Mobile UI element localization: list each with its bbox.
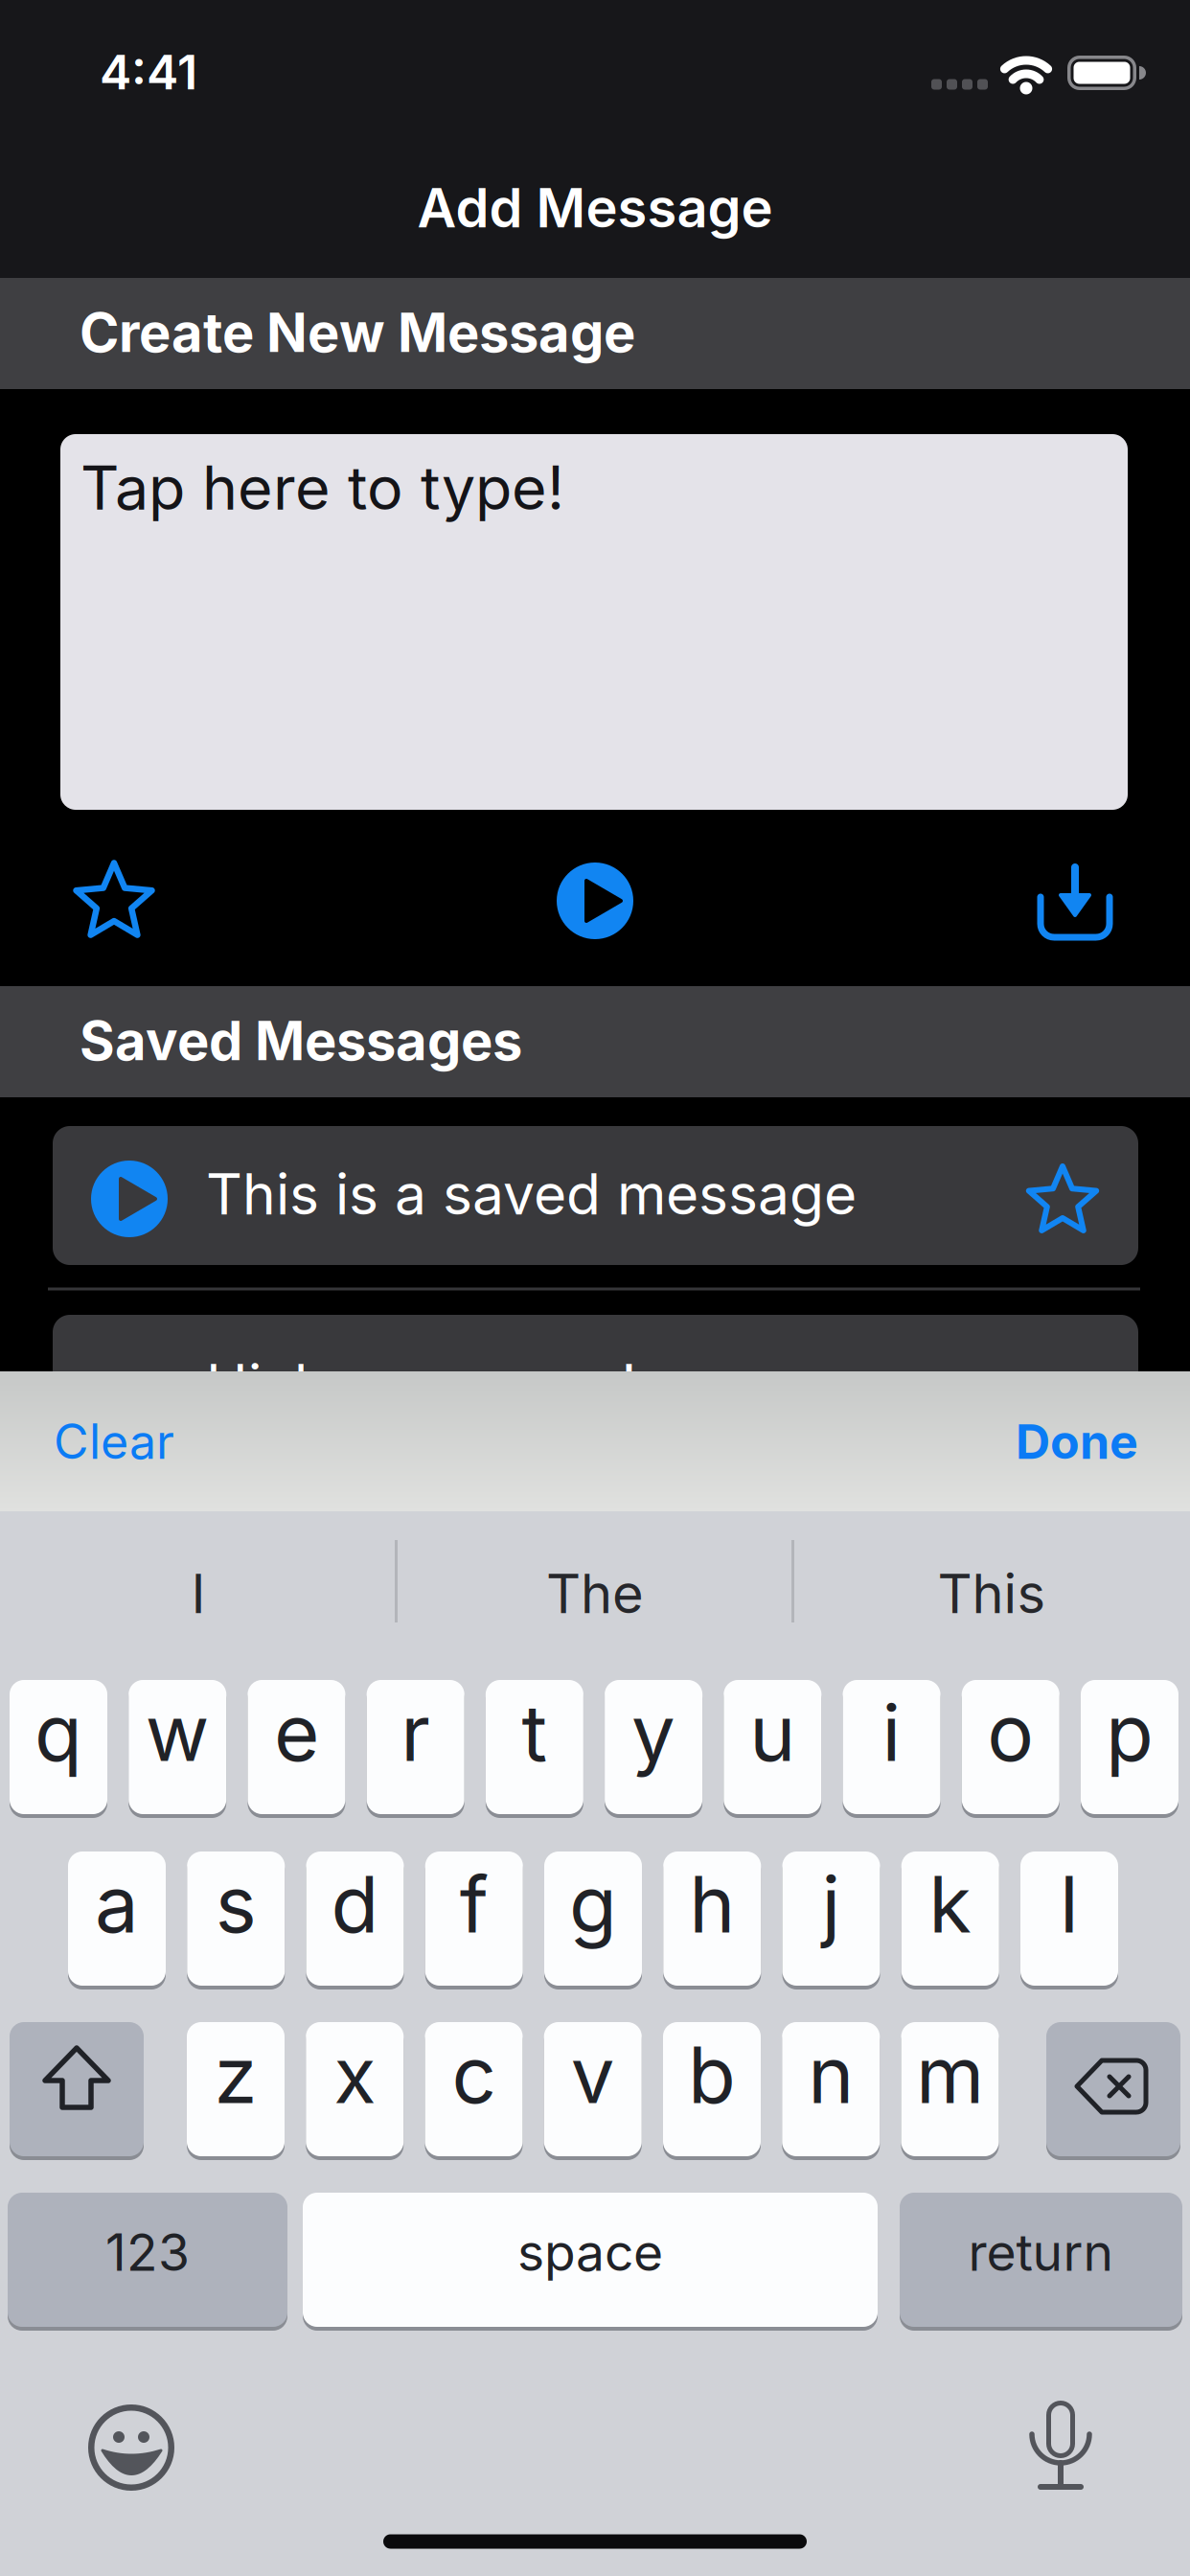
button[interactable]: c bbox=[425, 2022, 523, 2156]
button[interactable]: t bbox=[486, 1680, 583, 1814]
staticText: k bbox=[929, 1857, 972, 1951]
button[interactable]: Save message bbox=[1033, 849, 1117, 945]
button[interactable]: h bbox=[663, 1851, 761, 1986]
button[interactable]: u bbox=[724, 1680, 821, 1814]
staticText: f bbox=[460, 1857, 488, 1951]
button[interactable]: Favorite bbox=[1021, 1159, 1104, 1241]
button[interactable]: Hi, how are you! bbox=[53, 1315, 1138, 1454]
staticText: Create New Message bbox=[80, 300, 635, 365]
staticText: e bbox=[274, 1686, 319, 1780]
staticText: 123 bbox=[105, 2221, 190, 2283]
button[interactable]: w bbox=[129, 1680, 226, 1814]
button[interactable]: Tap here to type! bbox=[60, 434, 1128, 810]
staticText: t bbox=[522, 1686, 547, 1780]
button[interactable]: The bbox=[403, 1522, 787, 1666]
staticText: g bbox=[569, 1857, 617, 1951]
button[interactable]: r bbox=[367, 1680, 464, 1814]
button[interactable]: Emoji bbox=[85, 2402, 177, 2494]
staticText: d bbox=[331, 1857, 379, 1951]
staticText: u bbox=[750, 1686, 796, 1780]
staticText: The bbox=[546, 1561, 644, 1626]
staticText: x bbox=[334, 2028, 376, 2122]
staticText: j bbox=[822, 1857, 841, 1951]
button[interactable]: l bbox=[1020, 1851, 1118, 1986]
staticText: i bbox=[882, 1686, 901, 1780]
button[interactable]: s bbox=[187, 1851, 285, 1986]
button[interactable]: Shift bbox=[10, 2022, 144, 2156]
staticText: n bbox=[808, 2028, 854, 2122]
button[interactable]: k bbox=[901, 1851, 999, 1986]
staticText: h bbox=[689, 1857, 735, 1951]
staticText: b bbox=[688, 2028, 736, 2122]
button[interactable]: i bbox=[843, 1680, 940, 1814]
button[interactable]: This bbox=[800, 1522, 1183, 1666]
staticText: c bbox=[452, 2028, 496, 2122]
button[interactable]: f bbox=[425, 1851, 523, 1986]
staticText: p bbox=[1106, 1686, 1154, 1780]
button[interactable]: Done bbox=[851, 1371, 1138, 1511]
staticText: Done bbox=[1016, 1412, 1138, 1470]
button[interactable]: return bbox=[900, 2193, 1182, 2327]
staticText: v bbox=[571, 2028, 615, 2122]
staticText: Hi, how are you! bbox=[206, 1351, 637, 1419]
button[interactable]: Play bbox=[557, 862, 633, 939]
staticText: z bbox=[214, 2028, 257, 2122]
button[interactable]: q bbox=[10, 1680, 107, 1814]
button[interactable]: Dictate bbox=[1024, 2398, 1097, 2494]
staticText: q bbox=[34, 1686, 82, 1780]
button[interactable]: y bbox=[605, 1680, 702, 1814]
staticText: This is a saved message bbox=[206, 1160, 857, 1228]
button[interactable]: p bbox=[1081, 1680, 1179, 1814]
button[interactable]: d bbox=[306, 1851, 404, 1986]
staticText: m bbox=[916, 2028, 984, 2122]
staticText: space bbox=[517, 2221, 663, 2283]
button[interactable]: j bbox=[782, 1851, 880, 1986]
staticText: Saved Messages bbox=[80, 1008, 522, 1073]
button[interactable]: a bbox=[68, 1851, 166, 1986]
button[interactable]: space bbox=[303, 2193, 878, 2327]
staticText: l bbox=[1060, 1857, 1079, 1951]
staticText: 4:41 bbox=[100, 43, 197, 101]
button[interactable]: e bbox=[248, 1680, 345, 1814]
button[interactable]: 123 bbox=[8, 2193, 287, 2327]
button[interactable]: Delete bbox=[1046, 2022, 1180, 2156]
button[interactable]: g bbox=[544, 1851, 642, 1986]
staticText: w bbox=[145, 1686, 210, 1780]
button[interactable]: n bbox=[782, 2022, 880, 2156]
staticText: Add Message bbox=[417, 175, 773, 240]
button[interactable]: Clear bbox=[54, 1371, 341, 1511]
button[interactable]: v bbox=[544, 2022, 642, 2156]
button[interactable]: o bbox=[962, 1680, 1060, 1814]
button[interactable]: z bbox=[187, 2022, 285, 2156]
button[interactable]: b bbox=[663, 2022, 761, 2156]
button[interactable]: I bbox=[7, 1522, 390, 1666]
staticText: a bbox=[95, 1857, 139, 1951]
button[interactable]: This is a saved message bbox=[53, 1126, 1138, 1265]
button[interactable]: x bbox=[306, 2022, 404, 2156]
staticText: Tap here to type! bbox=[80, 451, 564, 524]
staticText: This bbox=[938, 1561, 1046, 1626]
staticText: r bbox=[401, 1686, 430, 1780]
staticText: I bbox=[191, 1561, 206, 1626]
button[interactable]: Favorite bbox=[68, 855, 160, 947]
staticText: o bbox=[987, 1686, 1034, 1780]
staticText: y bbox=[632, 1686, 676, 1780]
button[interactable]: m bbox=[901, 2022, 999, 2156]
staticText: s bbox=[215, 1857, 257, 1951]
staticText: Clear bbox=[54, 1412, 174, 1470]
staticText: return bbox=[968, 2221, 1114, 2283]
